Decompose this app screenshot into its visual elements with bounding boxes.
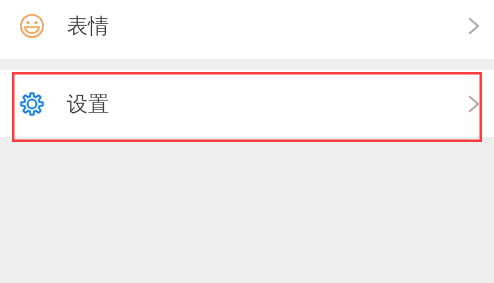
staticText: 表情 [67, 13, 109, 39]
staticText: 设置 [67, 91, 109, 117]
button[interactable]: 设置 [0, 70, 494, 137]
button[interactable]: 表情 [0, 0, 494, 59]
other: Selected item highlight [0, 0, 494, 283]
